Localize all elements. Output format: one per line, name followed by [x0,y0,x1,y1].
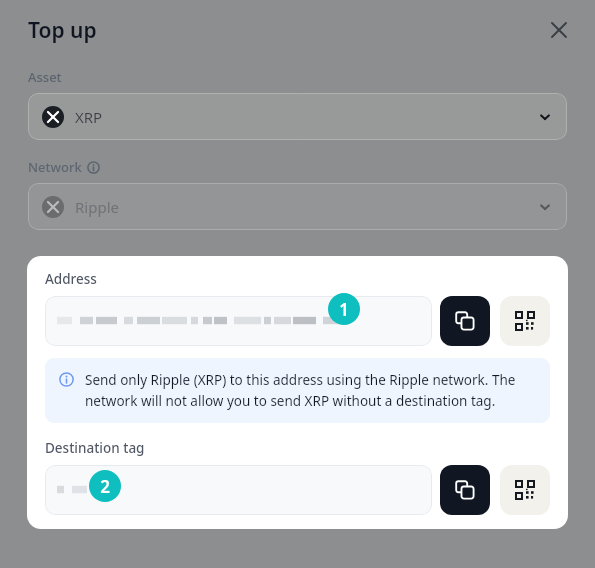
staticText: Top up [28,16,97,45]
button[interactable] [45,296,432,346]
button[interactable]: Copy Address [440,296,490,346]
button[interactable]: Close [543,14,575,46]
staticText: Network [28,158,82,176]
button[interactable]: Show QR code for Address [500,296,550,346]
staticText: 2 [100,475,110,498]
staticText: Asset [28,68,62,86]
button[interactable]: Ripple [28,183,567,230]
button[interactable]: Copy Destination tag [440,465,490,515]
staticText: XRP [75,107,103,127]
button[interactable] [45,465,432,515]
button[interactable]: Show QR code for Destination tag [500,465,550,515]
staticText: Send only Ripple (XRP) to this address u… [85,371,536,410]
staticText: Address [45,270,97,288]
button[interactable]: XRP [28,93,567,140]
staticText: Ripple [75,197,119,217]
staticText: 1 [339,298,349,321]
staticText: Destination tag [45,439,145,457]
